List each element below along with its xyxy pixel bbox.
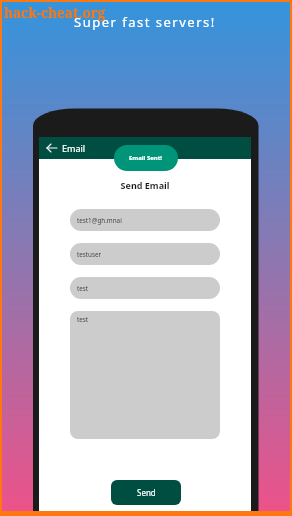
staticText: test1@gh.mnai <box>77 216 122 225</box>
staticText: Send <box>137 487 156 498</box>
staticText: Email <box>62 142 86 154</box>
staticText: Super fast servers! <box>74 13 216 31</box>
staticText: testuser <box>77 250 102 259</box>
staticText: hack-cheat.org <box>4 4 106 22</box>
button[interactable]: testuser <box>70 243 220 265</box>
button[interactable]: Back <box>47 142 57 154</box>
staticText: Send Email <box>39 179 251 191</box>
staticText: test <box>77 284 89 293</box>
button[interactable]: test1@gh.mnai <box>70 209 220 231</box>
button[interactable]: test <box>70 277 220 299</box>
button[interactable]: Send <box>111 480 181 505</box>
button[interactable]: Email Sent! <box>114 145 178 171</box>
staticText: test <box>77 315 89 324</box>
staticText: Email Sent! <box>129 154 163 162</box>
button[interactable]: test <box>70 311 220 439</box>
